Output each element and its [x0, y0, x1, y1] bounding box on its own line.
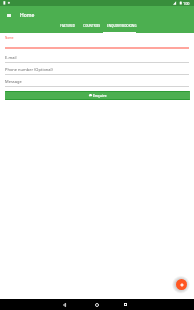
button[interactable]: Enquire: [5, 91, 190, 100]
staticText: ENQUIRY/BOOKING: [107, 24, 137, 28]
staticText: COUNTRIES: [83, 24, 100, 28]
staticText: FEATURED: [60, 24, 76, 28]
staticText: Message: [5, 79, 22, 84]
button[interactable]: Add: [176, 279, 187, 290]
staticText: E-mail: [5, 55, 17, 60]
button[interactable]: Open navigation menu: [3, 9, 15, 21]
button[interactable]: Home: [91, 299, 102, 310]
button[interactable]: ENQUIRY/BOOKING: [103, 22, 136, 33]
staticText: Phone number (Optional): [5, 67, 53, 72]
button[interactable]: COUNTRIES: [83, 22, 100, 33]
button[interactable]: FEATURED: [59, 22, 76, 33]
staticText: Home: [20, 12, 35, 19]
button[interactable]: Recent apps: [120, 299, 131, 310]
staticText: 100: [183, 1, 190, 6]
staticText: Name: [5, 36, 14, 40]
staticText: Enquire: [93, 93, 107, 98]
button[interactable]: Back: [59, 299, 70, 310]
